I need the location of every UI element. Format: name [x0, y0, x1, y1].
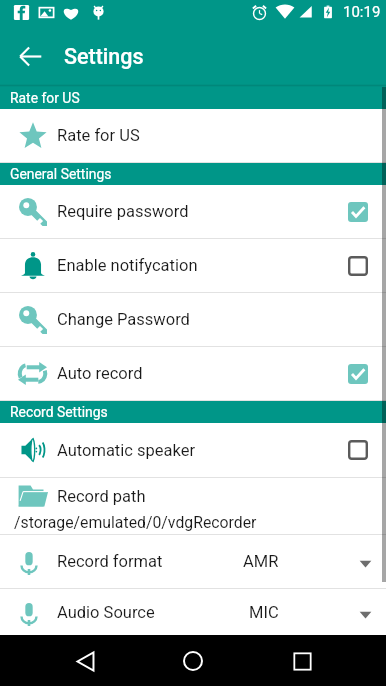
staticText: Change Password	[57, 310, 190, 329]
staticText: Rate for US	[57, 126, 140, 145]
staticText: Auto record	[57, 364, 143, 383]
staticText: Require password	[57, 202, 189, 221]
staticText: Record path	[57, 487, 146, 506]
staticText: AMR	[243, 552, 279, 571]
button[interactable]: Recent apps	[278, 637, 326, 685]
button[interactable]: Rate for US	[0, 109, 386, 162]
button[interactable]: Require password	[0, 185, 386, 238]
button[interactable]: Audio Source	[0, 589, 386, 635]
staticText: Record Settings	[10, 404, 108, 420]
button[interactable]: Auto record	[0, 347, 386, 400]
button[interactable]: Record path	[0, 478, 386, 535]
staticText: MIC	[249, 603, 279, 622]
staticText: Record format	[57, 552, 163, 571]
button[interactable]: Change Password	[0, 293, 386, 346]
staticText: Settings	[64, 44, 144, 69]
staticText: Enable notifycation	[57, 256, 198, 275]
button[interactable]: Back	[12, 38, 48, 74]
button[interactable]: Record format	[0, 535, 386, 588]
staticText: /storage/emulated/0/vdgRecorder	[14, 513, 257, 532]
button[interactable]: Home	[169, 637, 217, 685]
button[interactable]: Enable notifycation	[0, 239, 386, 292]
staticText: Automatic speaker	[57, 441, 196, 460]
button[interactable]: Back	[61, 637, 109, 685]
staticText: Rate for US	[10, 90, 80, 106]
staticText: 10:19	[343, 3, 381, 21]
staticText: Audio Source	[57, 603, 155, 622]
button[interactable]: Automatic speaker	[0, 423, 386, 477]
staticText: General Settings	[10, 166, 112, 182]
